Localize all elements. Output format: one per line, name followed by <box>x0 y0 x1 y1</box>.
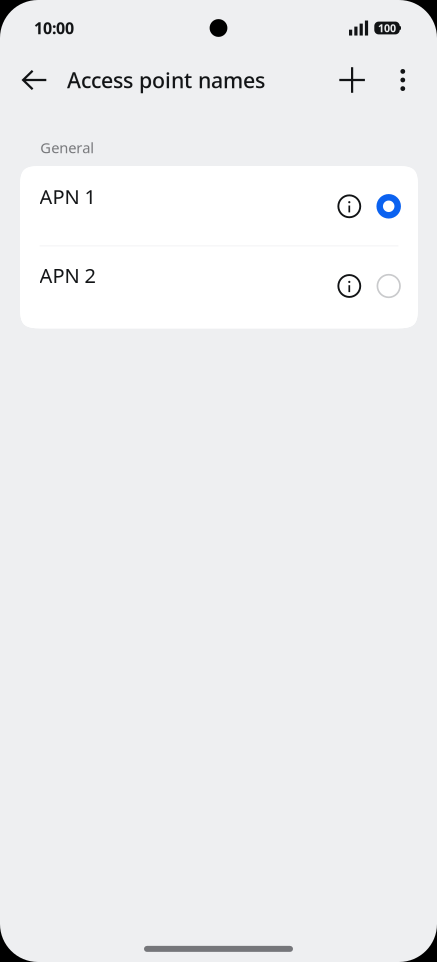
button[interactable]: About APN 1 <box>337 166 361 247</box>
button[interactable]: Navigate up <box>12 56 56 104</box>
staticText: Access point names <box>67 66 265 94</box>
staticText: 100 <box>378 21 396 35</box>
button[interactable] <box>20 166 418 247</box>
button[interactable]: Add APN <box>330 56 374 104</box>
button[interactable]: Select APN 2 <box>376 245 402 327</box>
staticText: 10:00 <box>34 17 74 39</box>
staticText: APN 1 <box>40 183 96 210</box>
staticText: General <box>40 138 94 157</box>
button[interactable]: About APN 2 <box>337 245 361 327</box>
button[interactable]: APN 1, selected <box>376 166 402 247</box>
button[interactable] <box>20 247 418 328</box>
staticText: APN 2 <box>40 262 96 288</box>
button[interactable]: More options <box>386 56 420 104</box>
